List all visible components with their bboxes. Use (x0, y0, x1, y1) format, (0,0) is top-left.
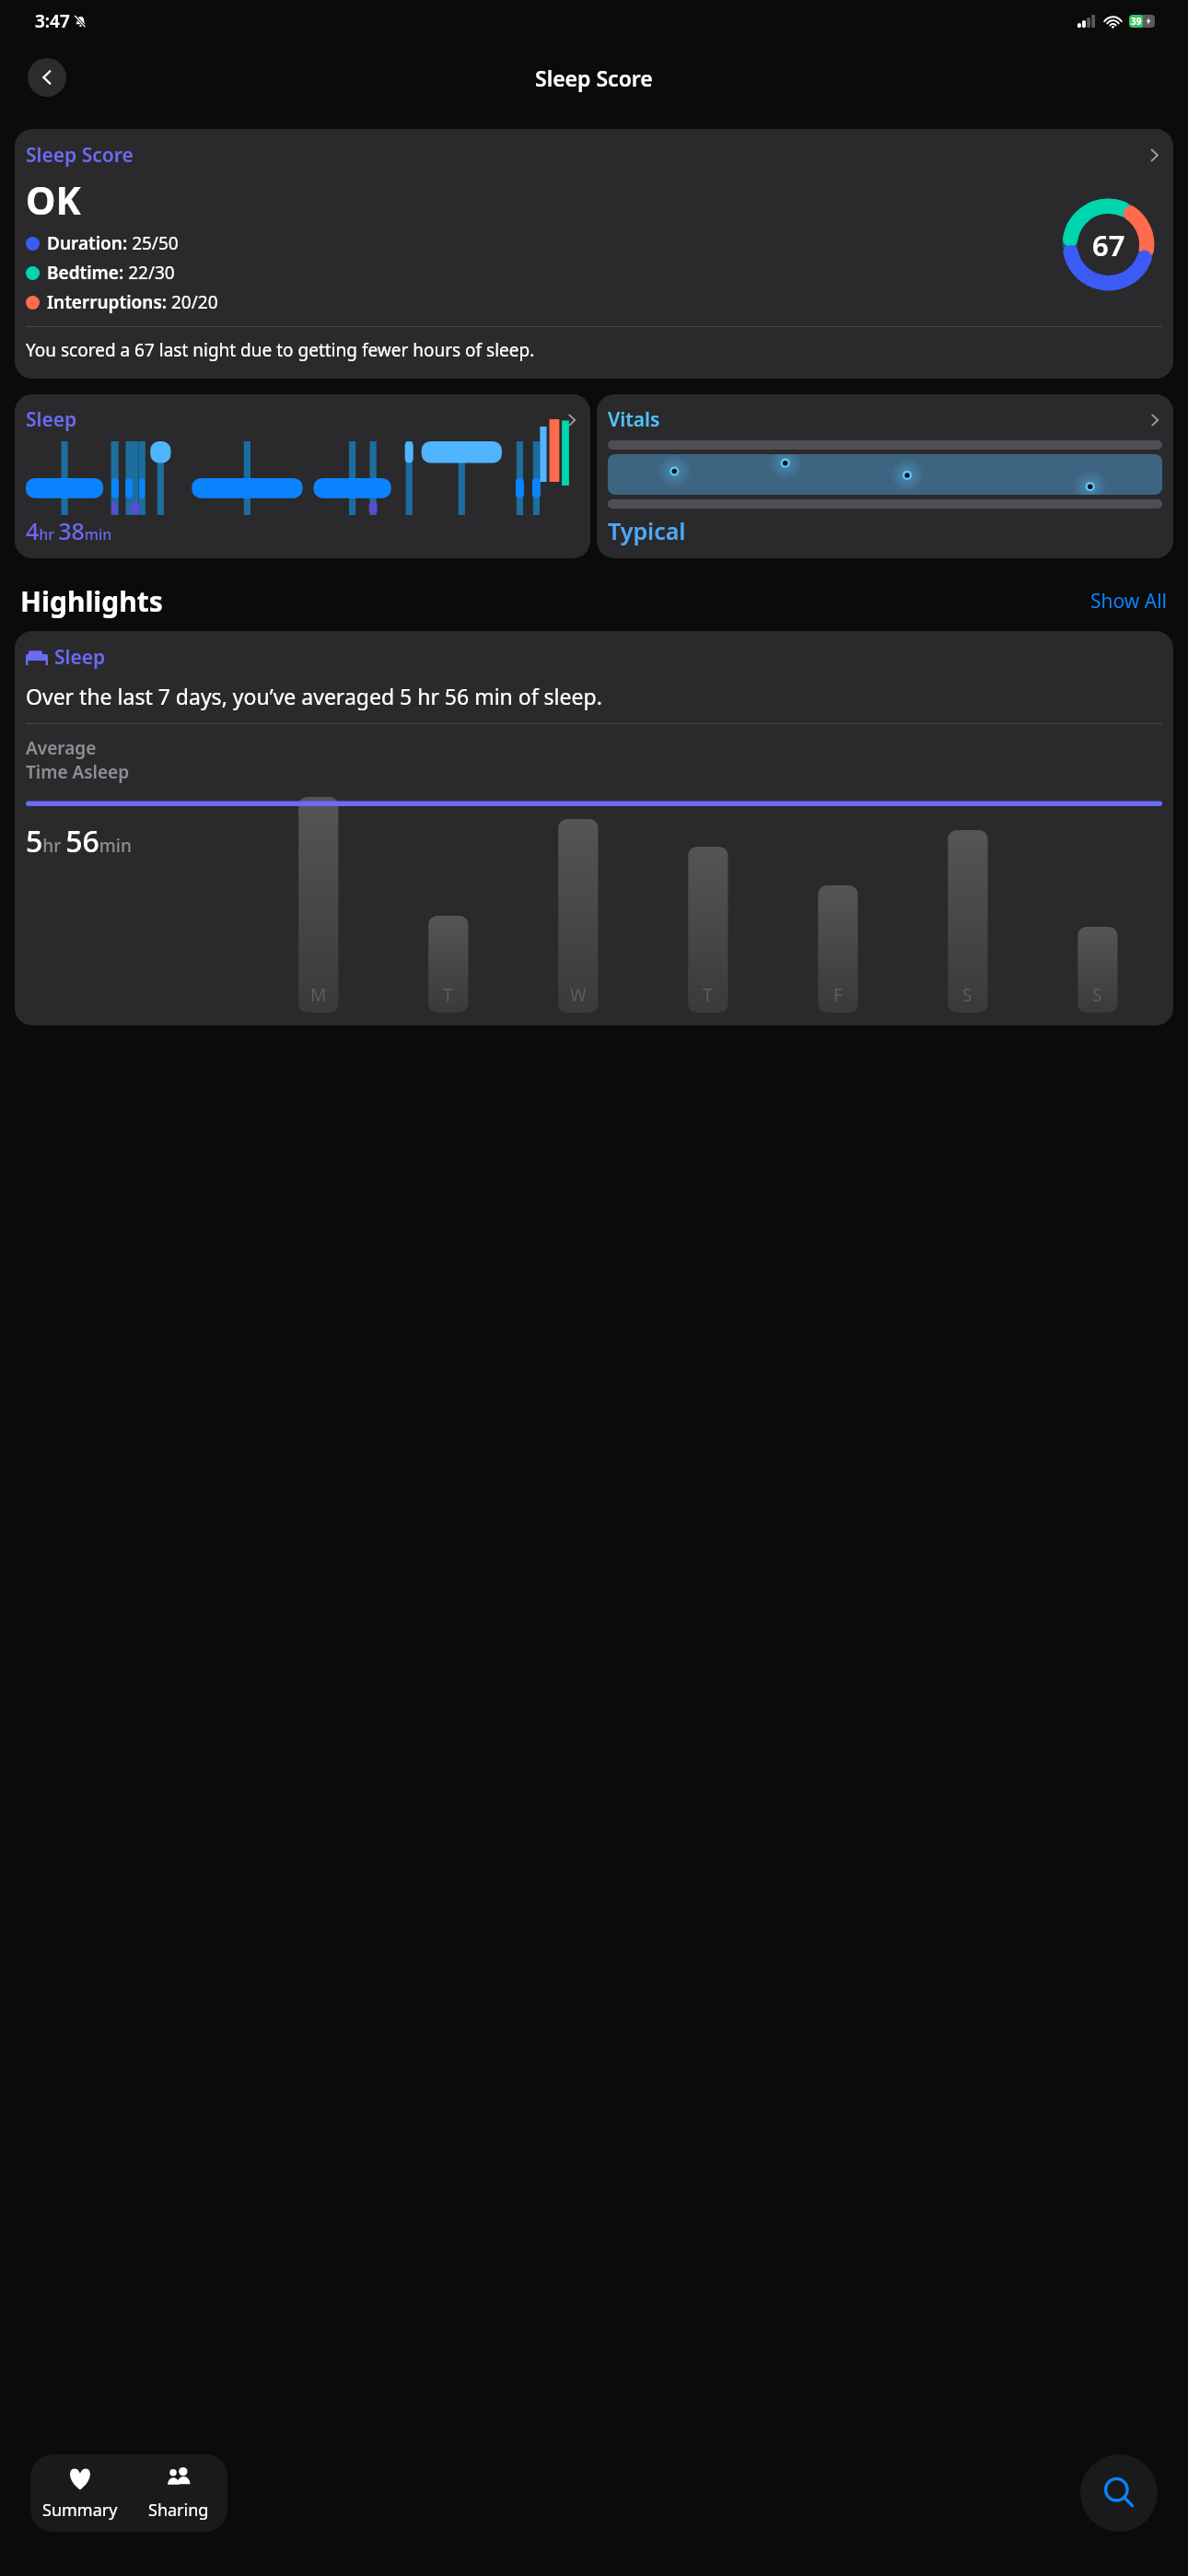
staticText: M (310, 983, 327, 1007)
staticText: S (962, 983, 973, 1007)
staticText: T (703, 983, 713, 1007)
staticText: S (1092, 983, 1102, 1007)
button[interactable]: Summary (30, 2454, 129, 2532)
button[interactable]: Sharing (129, 2454, 227, 2532)
staticText: 67 (1092, 226, 1125, 264)
button[interactable]: Sleep (15, 394, 590, 558)
staticText: Sleep (54, 644, 106, 671)
staticText: 5hr 56min (26, 821, 132, 861)
staticText: 4hr 38min (26, 515, 112, 546)
staticText: T (443, 983, 453, 1007)
staticText: Average (26, 736, 97, 760)
button[interactable]: Search (1080, 2454, 1158, 2532)
staticText: Sharing (148, 2499, 209, 2522)
staticText: OK (26, 174, 81, 226)
staticText: W (570, 983, 587, 1007)
button[interactable]: Sleep Score (15, 129, 1173, 379)
staticText: Interruptions: 20/20 (47, 290, 218, 314)
staticText: You scored a 67 last night due to gettin… (26, 338, 535, 362)
staticText: Bedtime: 22/30 (47, 261, 175, 285)
staticText: Duration: 25/50 (47, 231, 179, 255)
staticText: Vitals (608, 406, 660, 433)
button[interactable]: Show All (1090, 588, 1168, 615)
staticText: Sleep Score (535, 64, 653, 92)
button[interactable]: Back (28, 58, 66, 97)
staticText: Sleep Score (26, 142, 134, 169)
staticText: F (833, 983, 843, 1007)
staticText: Sleep (26, 406, 77, 433)
staticText: Typical (608, 515, 686, 546)
staticText: 3:47 (35, 9, 70, 33)
staticText: Show All (1090, 588, 1168, 615)
staticText: 39 (1131, 15, 1142, 28)
staticText: Over the last 7 days, you’ve averaged 5 … (26, 682, 602, 710)
staticText: Time Asleep (26, 760, 130, 784)
staticText: Highlights (20, 582, 163, 620)
button[interactable]: Sleep (15, 631, 1173, 1025)
button[interactable]: Vitals (597, 394, 1173, 558)
staticText: Summary (42, 2499, 118, 2522)
